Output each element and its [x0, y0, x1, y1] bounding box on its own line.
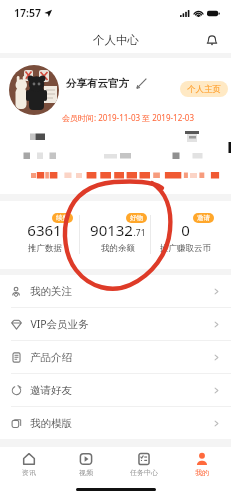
- staticText: 续费: [56, 214, 69, 222]
- staticText: 产品介绍: [30, 351, 72, 364]
- button[interactable]: 我的模版: [0, 407, 231, 439]
- staticText: 邀请好友: [30, 384, 72, 397]
- button[interactable]: Edit name: [134, 76, 148, 90]
- staticText: 我的模版: [30, 417, 72, 430]
- staticText: 邀请: [197, 214, 210, 222]
- staticText: 我的余额: [101, 243, 135, 254]
- button[interactable]: 资讯: [0, 447, 57, 477]
- staticText: 我的: [195, 468, 209, 477]
- button[interactable]: 个人主页: [180, 81, 228, 97]
- button[interactable]: 任务中心: [115, 447, 173, 477]
- button[interactable]: 90132: [83, 201, 153, 269]
- staticText: 17:57: [14, 6, 41, 20]
- staticText: 6361: [27, 220, 62, 240]
- staticText: 推广赚取云币: [160, 243, 211, 254]
- button[interactable]: 6361: [7, 201, 82, 269]
- staticText: 个人主页: [187, 84, 221, 95]
- button[interactable]: Notifications: [201, 29, 223, 51]
- staticText: 个人中心: [93, 33, 139, 47]
- staticText: 好物: [130, 214, 143, 222]
- staticText: 0: [181, 220, 190, 240]
- button[interactable]: VIP会员业务: [0, 308, 231, 340]
- button[interactable]: 邀请好友: [0, 374, 231, 406]
- staticText: 资讯: [22, 468, 36, 477]
- staticText: VIP会员业务: [30, 317, 89, 331]
- button[interactable]: 0: [150, 201, 220, 269]
- button[interactable]: 视频: [57, 447, 115, 477]
- button[interactable]: 我的关注: [0, 275, 231, 307]
- button[interactable]: 我的: [173, 447, 231, 477]
- staticText: 推广数据: [28, 243, 62, 254]
- staticText: 90132: [90, 220, 133, 240]
- button[interactable]: 产品介绍: [0, 341, 231, 373]
- button[interactable]: Avatar: [9, 65, 59, 115]
- staticText: 视频: [79, 468, 93, 477]
- staticText: .71: [133, 227, 146, 239]
- staticText: 分享有云官方: [66, 77, 129, 90]
- staticText: 任务中心: [130, 468, 158, 477]
- staticText: 我的关注: [30, 285, 72, 298]
- staticText: 会员时间: 2019-11-03 至 2019-12-03: [62, 112, 194, 123]
